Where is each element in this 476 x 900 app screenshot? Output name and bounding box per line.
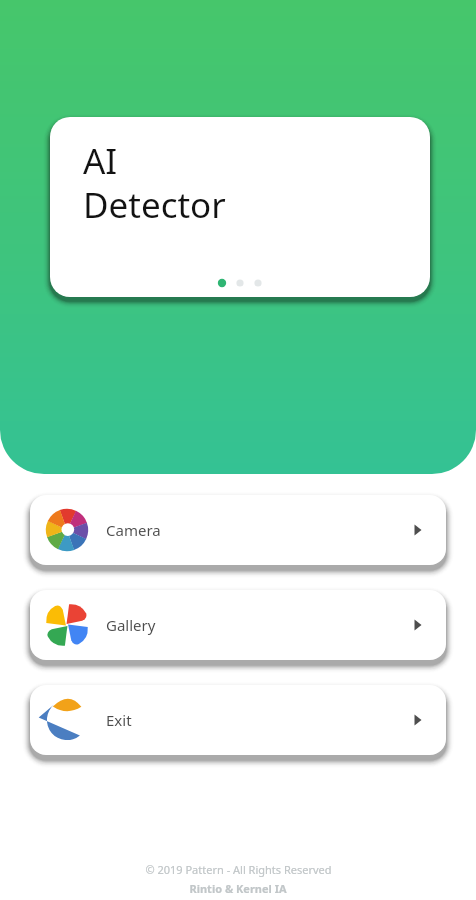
staticText: Exit [106,710,132,730]
button[interactable]: AI Detector [50,117,430,297]
button[interactable]: Camera [30,495,446,565]
other: Open Exit [408,710,428,730]
other: Open Gallery [408,615,428,635]
button[interactable]: Exit [30,685,446,755]
staticText: Rintio & Kernel IA [189,881,287,896]
staticText: © 2019 Pattern - All Rights Reserved [145,862,332,877]
staticText: Camera [106,520,161,540]
other: Open Camera [408,520,428,540]
button[interactable]: Gallery [30,590,446,660]
staticText: AI Detector [83,137,226,228]
staticText: Gallery [106,615,156,635]
